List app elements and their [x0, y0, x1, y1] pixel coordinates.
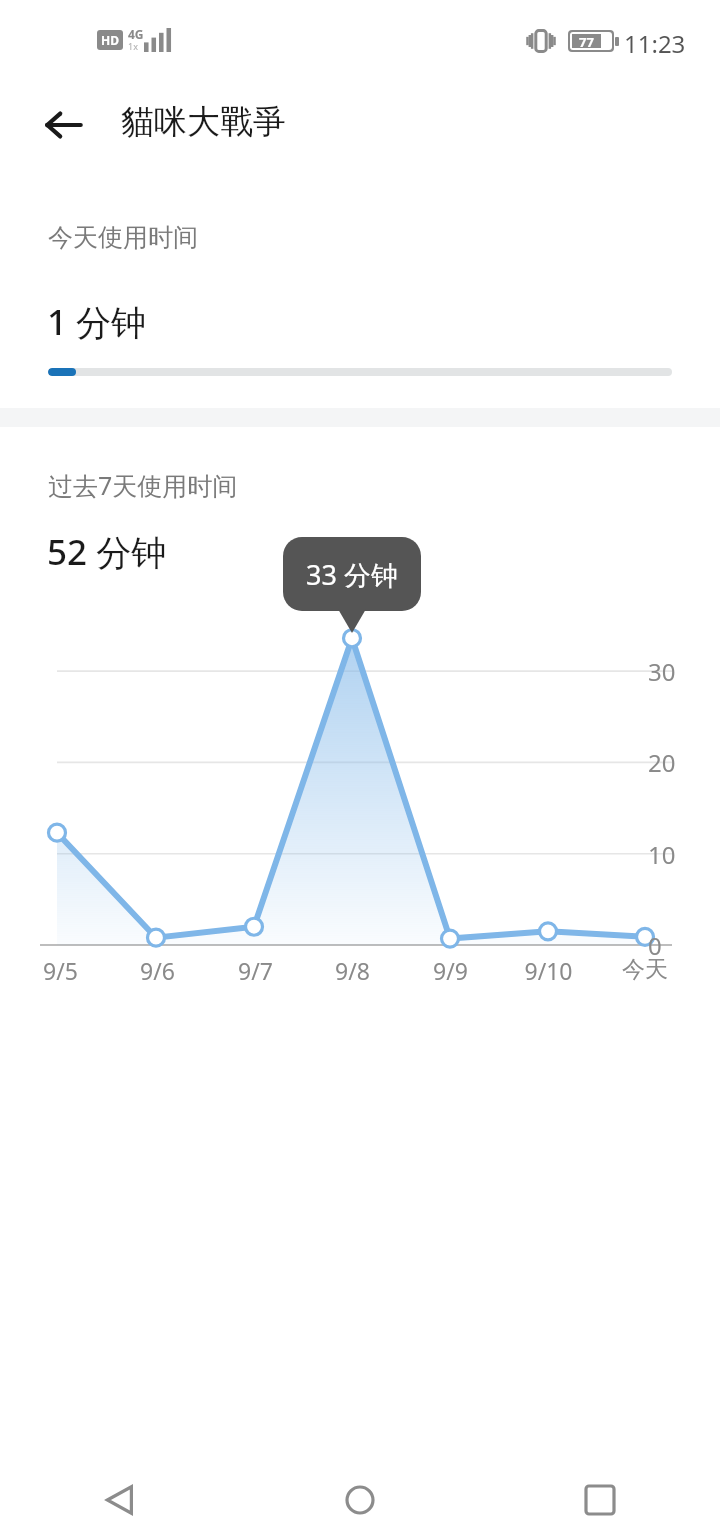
staticText: 9/5	[43, 955, 78, 986]
staticText: HD	[101, 32, 119, 48]
staticText: 今天	[622, 955, 668, 984]
staticText: 20	[648, 746, 676, 779]
staticText: 1x	[128, 40, 138, 52]
staticText: 9/10	[524, 955, 573, 986]
staticText: 过去7天使用时间	[48, 468, 238, 502]
staticText: 9/9	[433, 955, 468, 986]
staticText: 9/7	[238, 955, 273, 986]
staticText: 0	[648, 929, 662, 962]
staticText: 9/6	[140, 955, 175, 986]
staticText: 1 分钟	[47, 298, 147, 346]
staticText: 4G	[128, 26, 144, 42]
staticText: 貓咪大戰爭	[121, 101, 286, 143]
staticText: 今天使用时间	[48, 222, 198, 253]
staticText: 11:23	[624, 27, 686, 60]
button[interactable]: Back	[32, 93, 96, 157]
staticText: 30	[648, 655, 676, 688]
staticText: 77	[579, 33, 594, 51]
staticText: 9/8	[335, 955, 370, 986]
button[interactable]: Home	[240, 1460, 480, 1540]
staticText: 52 分钟	[47, 528, 167, 576]
button[interactable]: Back	[0, 1460, 240, 1540]
staticText: 10	[648, 838, 676, 871]
button[interactable]: Recent apps	[480, 1460, 720, 1540]
staticText: 33 分钟	[306, 556, 398, 593]
